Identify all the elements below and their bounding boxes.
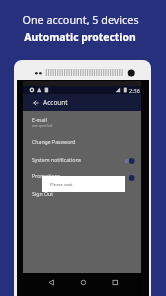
staticText: not specified — [32, 123, 53, 128]
staticText: System notifications — [32, 156, 82, 163]
button[interactable]: Recent apps — [108, 273, 122, 287]
button[interactable]: Promotions toggle — [124, 173, 139, 183]
button[interactable]: System notifications — [23, 153, 141, 165]
staticText: E-mail — [32, 116, 47, 123]
staticText: Account — [43, 98, 68, 107]
staticText: One account, 5 devices — [22, 12, 139, 27]
staticText: Please wait — [50, 181, 73, 187]
staticText: Promotions — [32, 172, 61, 179]
button[interactable]: Back — [42, 273, 56, 287]
staticText: Sign Out — [32, 190, 54, 197]
staticText: Automatic protection — [24, 30, 136, 44]
button[interactable]: Promotions — [23, 169, 141, 181]
staticText: Change Password — [32, 138, 76, 145]
staticText: 2:36 — [129, 87, 140, 94]
button[interactable]: Home — [75, 273, 89, 287]
button[interactable]: Change Password — [23, 135, 141, 147]
button[interactable]: E-mail — [23, 113, 141, 125]
button[interactable]: Sign Out — [23, 187, 141, 199]
other: Back — [33, 99, 39, 107]
button[interactable]: System notifications toggle — [124, 156, 139, 166]
button[interactable]: Back — [23, 94, 141, 111]
